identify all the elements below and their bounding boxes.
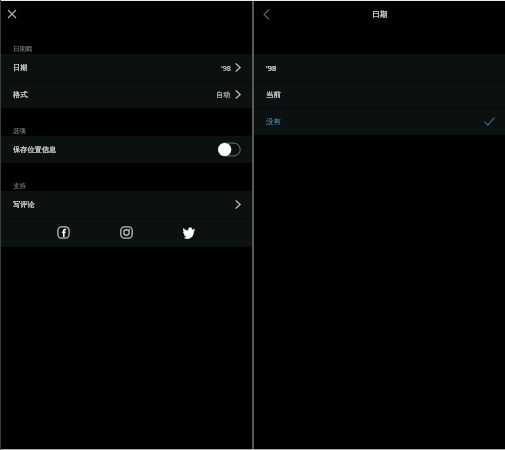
staticText: 当前	[266, 90, 281, 99]
button[interactable]: Twitter	[178, 222, 198, 242]
staticText: 格式	[13, 90, 28, 99]
staticText: 写评论	[13, 200, 35, 209]
button[interactable]: 日期	[0, 54, 252, 81]
staticText: 支持	[13, 182, 26, 190]
button[interactable]: 写评论	[0, 191, 252, 218]
button[interactable]: 当前	[254, 81, 505, 108]
staticText: 日期	[372, 9, 388, 19]
staticText: 日期	[13, 63, 28, 72]
button[interactable]: '98	[254, 54, 505, 81]
staticText: 自动	[216, 90, 231, 99]
button[interactable]: Close	[1, 3, 23, 25]
staticText: '98	[266, 63, 277, 73]
button[interactable]: 没有	[254, 108, 505, 135]
button[interactable]: Facebook	[53, 222, 73, 242]
staticText: 日期戳	[13, 45, 33, 53]
staticText: '98	[221, 63, 231, 73]
staticText: 选项	[13, 127, 26, 135]
staticText: 没有	[266, 117, 281, 126]
button[interactable]: 格式	[0, 81, 252, 108]
button[interactable]: 保存位置信息	[0, 136, 252, 163]
staticText: 保存位置信息	[13, 145, 57, 154]
button[interactable]: Back	[255, 3, 277, 25]
button[interactable]: Instagram	[116, 222, 136, 242]
